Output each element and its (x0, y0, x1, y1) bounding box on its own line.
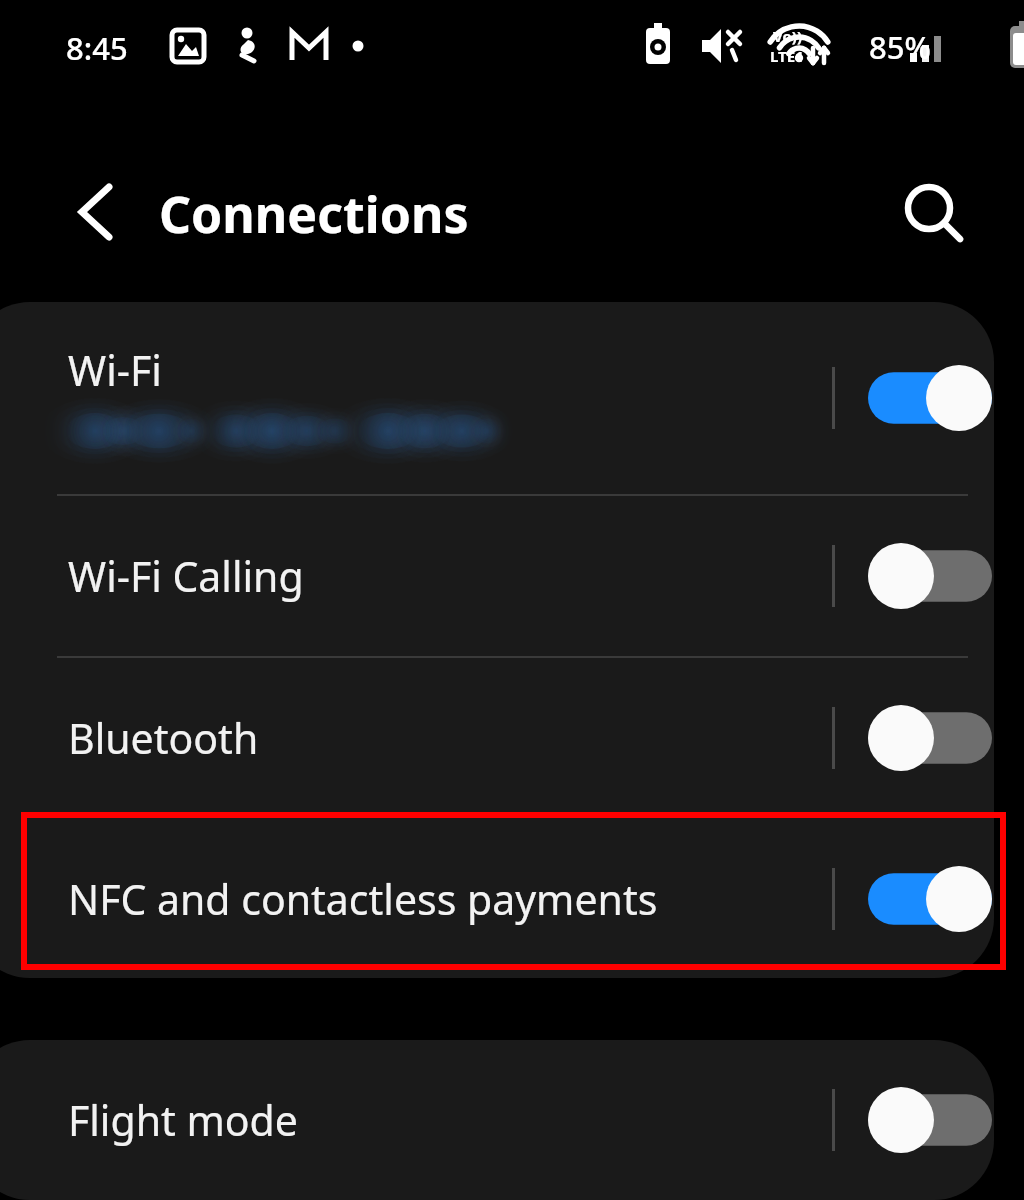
button[interactable]: Wi-Fi (0, 302, 994, 494)
button[interactable]: Back (48, 165, 134, 259)
staticText: Vo)) (773, 26, 802, 46)
button[interactable]: Flight mode off (835, 1040, 994, 1200)
staticText: Wi-Fi (68, 342, 162, 398)
button[interactable]: Bluetooth (0, 658, 994, 818)
button[interactable]: Search (884, 164, 980, 260)
staticText: 85% (869, 26, 931, 68)
button[interactable]: Wi-Fi Calling (0, 496, 994, 656)
button[interactable]: Bluetooth off (835, 658, 994, 818)
button[interactable]: Wi-Fi on (835, 302, 994, 494)
staticText: Wi-Fi Calling (68, 548, 304, 604)
staticText: LTE1 (770, 46, 804, 66)
button[interactable]: Wi-Fi Calling off (835, 496, 994, 656)
button[interactable]: NFC and contactless payments (0, 820, 994, 978)
button[interactable]: NFC and contactless payments on (835, 820, 994, 978)
staticText: 8:45 (66, 27, 128, 69)
staticText: Bluetooth (68, 710, 259, 766)
button[interactable]: Flight mode (0, 1040, 994, 1200)
staticText: Connections (159, 180, 469, 248)
staticText: NFC and contactless payments (68, 871, 658, 927)
staticText: Flight mode (68, 1092, 298, 1148)
